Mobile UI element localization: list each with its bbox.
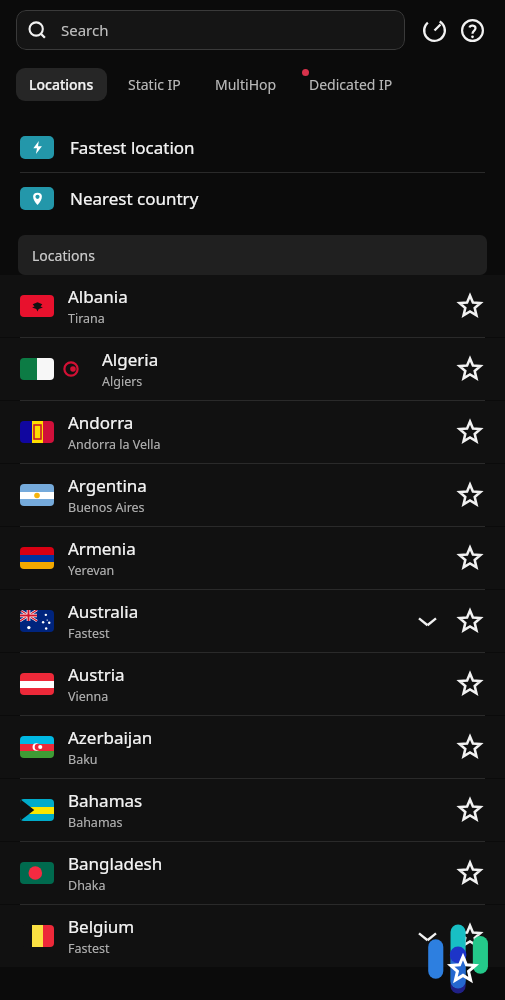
button[interactable]: Locations: [16, 68, 107, 101]
staticText: Bahamas: [68, 814, 123, 831]
staticText: Algiers: [102, 373, 143, 390]
staticText: Nearest country: [70, 187, 199, 210]
staticText: Belgium: [68, 915, 135, 938]
staticText: Dhaka: [68, 877, 106, 894]
staticText: MultiHop: [215, 75, 277, 94]
staticText: Fastest: [68, 625, 110, 642]
button[interactable]: Favorite Belgium: [451, 917, 489, 955]
staticText: Baku: [68, 751, 98, 768]
button[interactable]: Expand Australia: [409, 603, 445, 639]
staticText: Albania: [68, 285, 128, 308]
staticText: Bahamas: [68, 789, 143, 812]
button[interactable]: Speed test: [417, 13, 451, 47]
button[interactable]: Static IP: [115, 68, 194, 101]
staticText: Austria: [68, 663, 125, 686]
button[interactable]: Argentina: [0, 464, 505, 526]
staticText: Fastest location: [70, 136, 195, 159]
button[interactable]: Favorite Bangladesh: [451, 854, 489, 892]
button[interactable]: Help: [455, 13, 489, 47]
button[interactable]: Dedicated IP: [296, 68, 406, 101]
button[interactable]: Bahamas: [0, 779, 505, 841]
button[interactable]: Andorra: [0, 401, 505, 463]
button[interactable]: Nearest country: [0, 173, 505, 223]
button[interactable]: Connection status: [421, 918, 493, 1000]
button[interactable]: Fastest location: [0, 122, 505, 172]
button[interactable]: Azerbaijan: [0, 716, 505, 778]
staticText: Static IP: [128, 75, 181, 94]
staticText: Bangladesh: [68, 852, 163, 875]
staticText: Dedicated IP: [309, 75, 393, 94]
button[interactable]: Favorite Argentina: [451, 476, 489, 514]
button[interactable]: Favorite Armenia: [451, 539, 489, 577]
button[interactable]: Algeria: [0, 338, 505, 400]
button[interactable]: Search: [16, 10, 405, 50]
button[interactable]: Favorite Albania: [451, 287, 489, 325]
staticText: Yerevan: [68, 562, 115, 579]
button[interactable]: Favorite Andorra: [451, 413, 489, 451]
staticText: Argentina: [68, 474, 147, 497]
button[interactable]: Belgium: [0, 905, 505, 967]
button[interactable]: Expand Belgium: [409, 918, 445, 954]
staticText: Armenia: [68, 537, 136, 560]
staticText: Algeria: [102, 348, 159, 371]
staticText: Search: [61, 20, 109, 40]
staticText: Australia: [68, 600, 139, 623]
button[interactable]: Austria: [0, 653, 505, 715]
button[interactable]: Favorite Azerbaijan: [451, 728, 489, 766]
button[interactable]: Bangladesh: [0, 842, 505, 904]
button[interactable]: Favorite Algeria: [451, 350, 489, 388]
staticText: Andorra: [68, 411, 134, 434]
staticText: Azerbaijan: [68, 726, 153, 749]
staticText: Locations: [32, 246, 95, 265]
button[interactable]: MultiHop: [202, 68, 290, 101]
staticText: Buenos Aires: [68, 499, 145, 516]
button[interactable]: Favorite Bahamas: [451, 791, 489, 829]
staticText: Tirana: [68, 310, 105, 327]
staticText: Andorra la Vella: [68, 436, 161, 453]
staticText: Fastest: [68, 940, 110, 957]
button[interactable]: Armenia: [0, 527, 505, 589]
button[interactable]: Favorite Austria: [451, 665, 489, 703]
button[interactable]: Favorite Australia: [451, 602, 489, 640]
button[interactable]: Australia: [0, 590, 505, 652]
staticText: Locations: [29, 75, 94, 94]
staticText: Vienna: [68, 688, 109, 705]
button[interactable]: Albania: [0, 275, 505, 337]
